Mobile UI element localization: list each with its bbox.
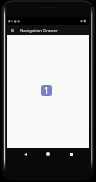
button[interactable]: Open navigation drawer bbox=[7, 25, 18, 35]
button[interactable]: Back bbox=[20, 150, 30, 158]
button[interactable]: Item 1 bbox=[41, 85, 52, 96]
button[interactable]: Home bbox=[43, 150, 53, 158]
staticText: 1 bbox=[44, 85, 49, 96]
button[interactable]: Recent apps bbox=[66, 150, 76, 158]
staticText: Navigation Drawer bbox=[20, 27, 58, 33]
